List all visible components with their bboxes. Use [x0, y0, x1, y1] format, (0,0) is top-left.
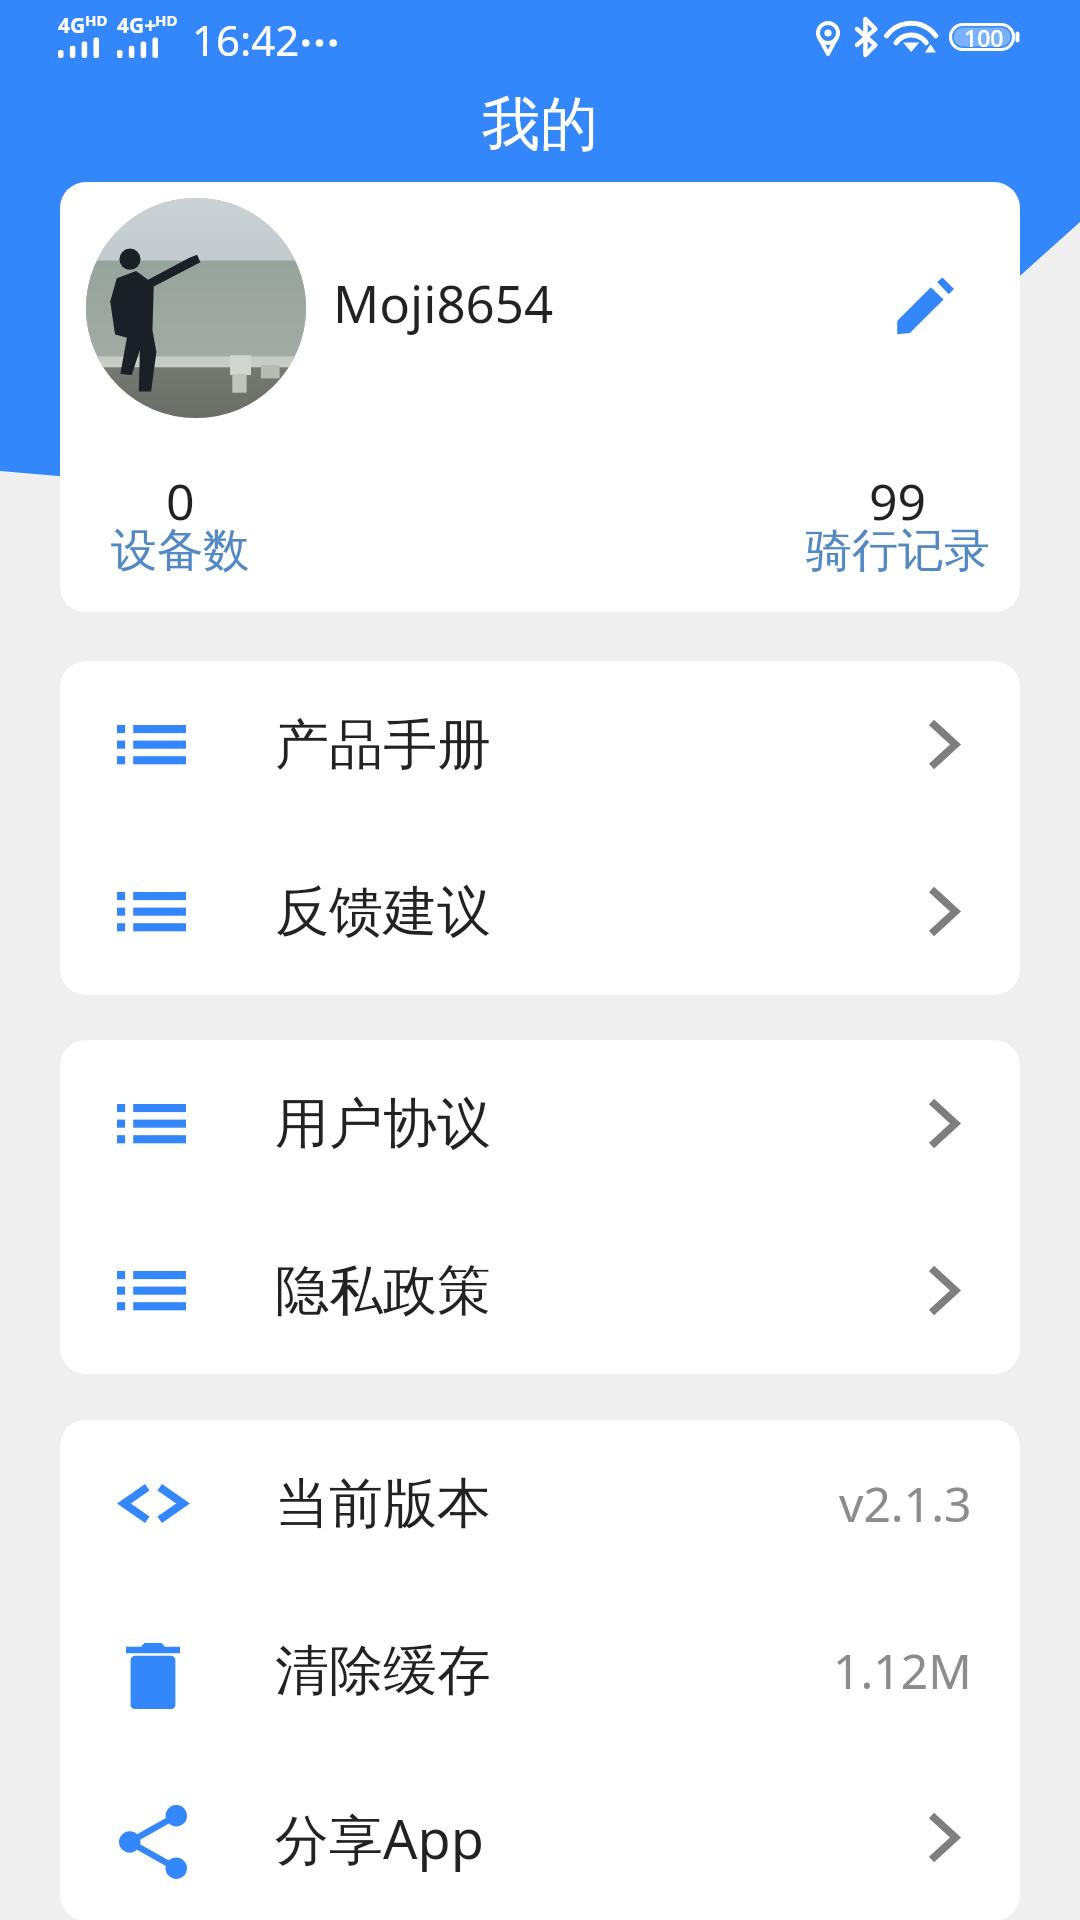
- button[interactable]: Profile photo: [86, 198, 306, 418]
- staticText: 产品手册: [275, 711, 491, 779]
- staticText: 隐私政策: [275, 1257, 491, 1325]
- button[interactable]: 清除缓存: [60, 1587, 1020, 1754]
- staticText: 0: [166, 467, 195, 535]
- staticText: HD: [155, 10, 178, 30]
- button[interactable]: 产品手册: [60, 661, 1020, 828]
- staticText: 设备数: [111, 522, 249, 580]
- staticText: v2.1.3: [839, 1471, 972, 1536]
- button[interactable]: 隐私政策: [60, 1207, 1020, 1374]
- staticText: 反馈建议: [275, 878, 491, 946]
- staticText: 4G: [58, 11, 86, 40]
- button[interactable]: 分享App: [60, 1754, 1020, 1920]
- staticText: 4G+: [117, 11, 157, 40]
- staticText: 当前版本: [275, 1470, 491, 1538]
- button[interactable]: 当前版本: [60, 1420, 1020, 1587]
- staticText: 1.12M: [833, 1638, 972, 1703]
- staticText: 99: [869, 467, 927, 535]
- button[interactable]: 99: [778, 467, 1018, 597]
- button[interactable]: Edit profile: [875, 257, 975, 357]
- staticText: 用户协议: [275, 1090, 491, 1158]
- staticText: Moji8654: [333, 268, 554, 337]
- staticText: HD: [85, 10, 108, 30]
- staticText: 骑行记录: [806, 522, 990, 580]
- staticText: 清除缓存: [275, 1637, 491, 1705]
- button[interactable]: 反馈建议: [60, 828, 1020, 995]
- staticText: 我的: [482, 88, 598, 160]
- staticText: 分享App: [275, 1801, 484, 1875]
- staticText: 16:42: [192, 11, 300, 68]
- staticText: 100: [964, 22, 1004, 50]
- button[interactable]: 用户协议: [60, 1040, 1020, 1207]
- button[interactable]: 0: [60, 467, 300, 597]
